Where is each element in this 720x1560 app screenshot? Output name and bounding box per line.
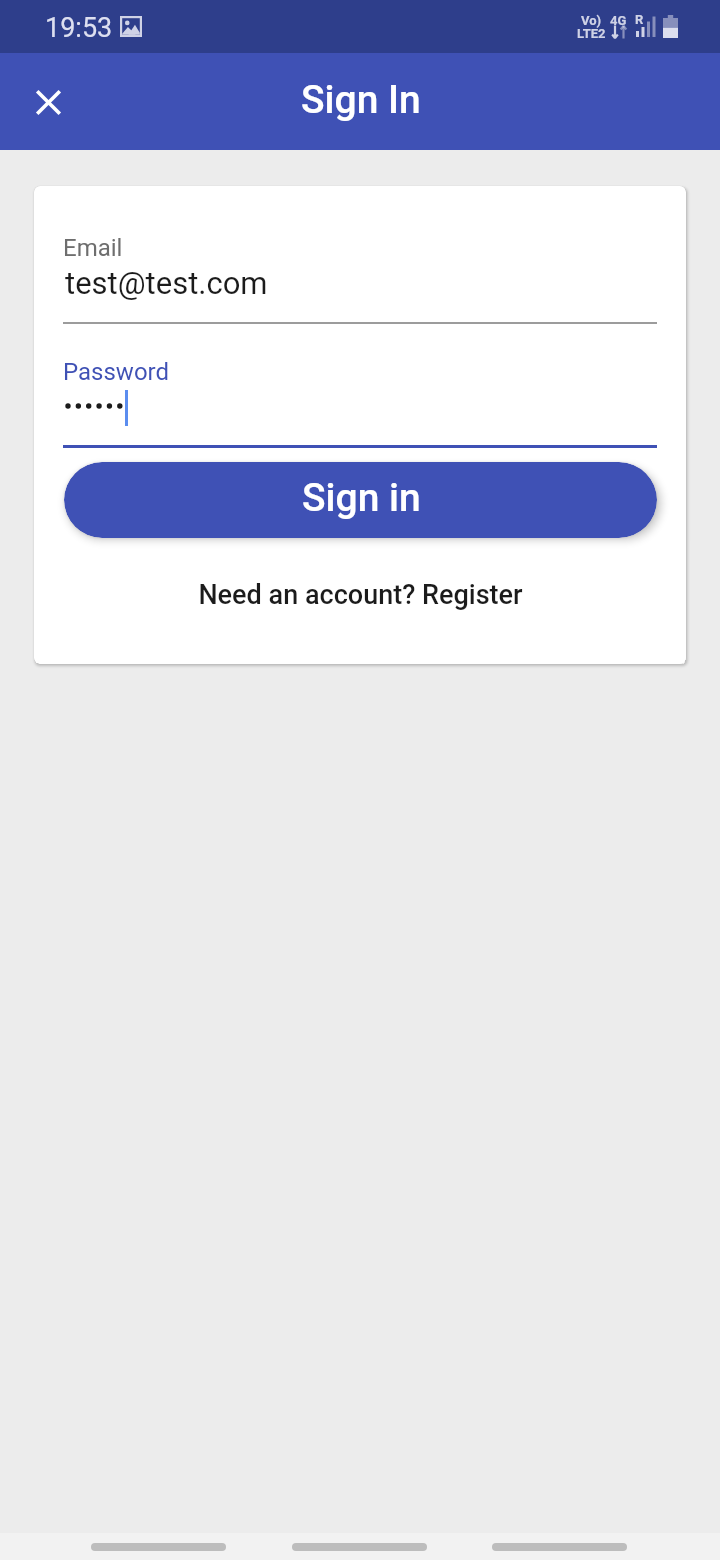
- staticText: 4G: [610, 13, 627, 28]
- button[interactable]: Close: [12, 66, 84, 138]
- button[interactable]: Back: [91, 1543, 226, 1551]
- button[interactable]: Need an account? Register: [34, 573, 686, 617]
- staticText: LTE2: [577, 26, 606, 41]
- staticText: Password: [63, 358, 170, 386]
- staticText: 19:53: [45, 12, 113, 44]
- staticText: Sign in: [302, 475, 421, 521]
- button[interactable]: Home: [292, 1543, 427, 1551]
- staticText: Email: [63, 234, 123, 262]
- staticText: Sign In: [301, 77, 421, 123]
- staticText: Vo): [581, 13, 602, 28]
- button[interactable]: Recents: [492, 1543, 627, 1551]
- staticText: Need an account? Register: [198, 579, 523, 611]
- staticText: R: [635, 12, 644, 27]
- button[interactable]: Sign in: [64, 462, 657, 538]
- staticText: test@test.com: [65, 265, 268, 301]
